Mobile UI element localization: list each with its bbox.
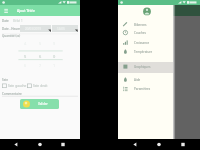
button[interactable]: Open navigation drawer xyxy=(2,6,11,15)
button[interactable]: 14:05 xyxy=(52,25,78,32)
staticText: Ajout Tétée xyxy=(17,8,35,12)
button[interactable]: Back xyxy=(12,139,20,150)
button[interactable]: 20/03/2019 xyxy=(20,25,51,32)
staticText: 7 xyxy=(39,63,42,68)
staticText: Température xyxy=(134,50,153,54)
button[interactable]: Back xyxy=(131,139,139,150)
button[interactable]: Home xyxy=(36,139,44,150)
staticText: Biberons xyxy=(134,23,147,27)
button[interactable]: Valider xyxy=(20,99,59,109)
staticText: 0 xyxy=(53,54,56,59)
staticText: Bébé 1 xyxy=(13,19,23,23)
staticText: Couches xyxy=(134,31,146,35)
button[interactable]: Recent apps xyxy=(59,139,67,150)
staticText: 5 xyxy=(24,54,27,59)
staticText: 5 xyxy=(39,41,42,46)
staticText: Valider xyxy=(38,102,48,106)
button[interactable]: Graphiques xyxy=(118,62,173,71)
staticText: Paramètres xyxy=(134,87,151,91)
staticText: Sein xyxy=(2,78,9,82)
staticText: Commentaire xyxy=(2,92,22,96)
staticText: Date xyxy=(2,19,9,23)
button[interactable]: Aide xyxy=(118,75,173,84)
button[interactable]: Biberons xyxy=(118,20,173,29)
staticText: 4 xyxy=(24,41,27,46)
button[interactable]: Home xyxy=(155,139,163,150)
staticText: 14:05 xyxy=(57,27,65,31)
button[interactable]: Sein droit xyxy=(27,83,51,89)
button[interactable]: Température xyxy=(118,47,173,56)
staticText: Date - Heure xyxy=(2,27,21,31)
staticText: Sein droit xyxy=(33,84,48,88)
staticText: Sein gauche xyxy=(8,84,27,88)
staticText: 6 xyxy=(39,54,42,59)
button[interactable]: Croissance xyxy=(118,38,173,47)
button[interactable]: Paramètres xyxy=(118,84,173,93)
staticText: 1 xyxy=(53,63,56,68)
staticText: Croissance xyxy=(134,41,150,45)
button[interactable]: Couches xyxy=(118,28,173,37)
staticText: 20/03/2019 xyxy=(25,27,41,31)
staticText: 9 xyxy=(53,41,56,46)
staticText: 6 xyxy=(24,63,27,68)
button[interactable]: Recent apps xyxy=(179,139,187,150)
button[interactable] xyxy=(118,62,173,73)
staticText: Quantité (cc) xyxy=(2,34,21,38)
button[interactable]: Sein gauche xyxy=(2,83,26,89)
staticText: Aide xyxy=(134,78,141,82)
staticText: Graphiques xyxy=(134,65,151,69)
